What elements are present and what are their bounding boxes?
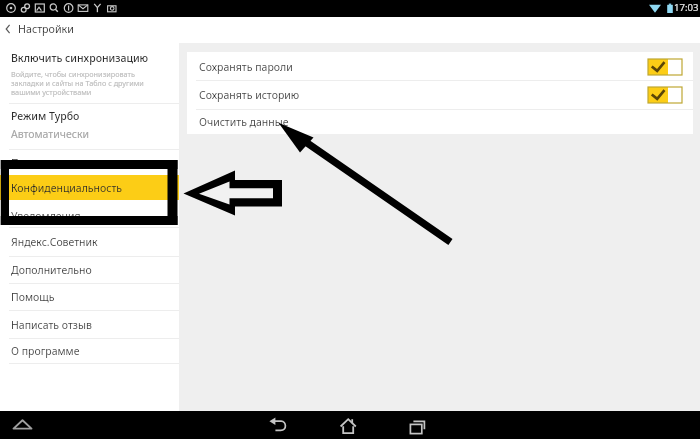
staticText: Сохранять историю (199, 88, 300, 102)
staticText: Включить синхронизацию (11, 51, 149, 65)
staticText: Поиск (11, 156, 43, 170)
button[interactable]: Дополнительно (0, 257, 179, 283)
staticText: Дополнительно (11, 263, 92, 277)
staticText: Автоматически (11, 127, 89, 141)
staticText: Очистить данные (199, 115, 289, 129)
staticText: Войдите, чтобы синхронизировать закладки… (11, 69, 144, 97)
button[interactable]: Сохранять пароли (187, 54, 693, 80)
staticText: 17:03 (674, 1, 699, 14)
button[interactable]: Hide navigation bar (10, 415, 36, 435)
button[interactable]: Конфиденциальность (0, 175, 179, 200)
staticText: Конфиденциальность (11, 181, 123, 195)
staticText: Режим Турбо (11, 109, 80, 123)
button[interactable]: Toggle (648, 87, 682, 103)
button[interactable]: Включить синхронизацию (0, 43, 179, 103)
button[interactable]: Back (0, 19, 16, 39)
button[interactable]: Режим Турбо (0, 104, 179, 149)
button[interactable]: Home (339, 415, 363, 435)
button[interactable]: Очистить данные (187, 110, 693, 134)
staticText: Сохранять пароли (199, 60, 293, 74)
button[interactable]: Сохранять историю (187, 81, 693, 109)
button[interactable]: Toggle (648, 59, 682, 75)
button[interactable]: Поиск (0, 150, 179, 175)
staticText: Написать отзыв (11, 318, 92, 332)
button[interactable]: Уведомления (0, 200, 179, 227)
staticText: Помощь (11, 290, 55, 304)
button[interactable]: Написать отзыв (0, 311, 179, 338)
button[interactable]: Яндекс.Советник (0, 228, 179, 256)
button[interactable]: Помощь (0, 284, 179, 310)
button[interactable]: О программе (0, 339, 179, 363)
staticText: Уведомления (11, 209, 81, 223)
staticText: Настройки (18, 22, 74, 37)
button[interactable]: Recent apps (409, 415, 433, 435)
staticText: Яндекс.Советник (11, 235, 98, 249)
button[interactable]: Back (268, 415, 292, 435)
staticText: О программе (11, 344, 80, 358)
